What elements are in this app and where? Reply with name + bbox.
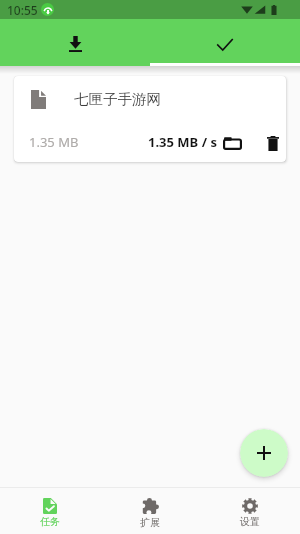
button[interactable]: 任务 bbox=[0, 498, 100, 534]
staticText: 10:55 bbox=[7, 2, 38, 18]
staticText: 设置 bbox=[240, 515, 260, 528]
button[interactable]: 设置 bbox=[200, 498, 300, 534]
staticText: 扩展 bbox=[140, 516, 160, 529]
button[interactable]: Completed bbox=[150, 19, 300, 63]
button[interactable]: Add download bbox=[240, 429, 288, 477]
staticText: 1.35 MB / s bbox=[148, 133, 217, 151]
button[interactable]: Delete bbox=[260, 125, 285, 159]
staticText: 七匣子手游网 bbox=[74, 90, 161, 108]
staticText: 任务 bbox=[40, 515, 60, 528]
button[interactable]: 扩展 bbox=[100, 498, 200, 534]
button[interactable]: 七匣子手游网 bbox=[14, 76, 286, 162]
button[interactable]: Open folder bbox=[218, 125, 247, 159]
staticText: 1.35 MB bbox=[29, 133, 79, 151]
button[interactable]: Downloading bbox=[0, 19, 150, 63]
